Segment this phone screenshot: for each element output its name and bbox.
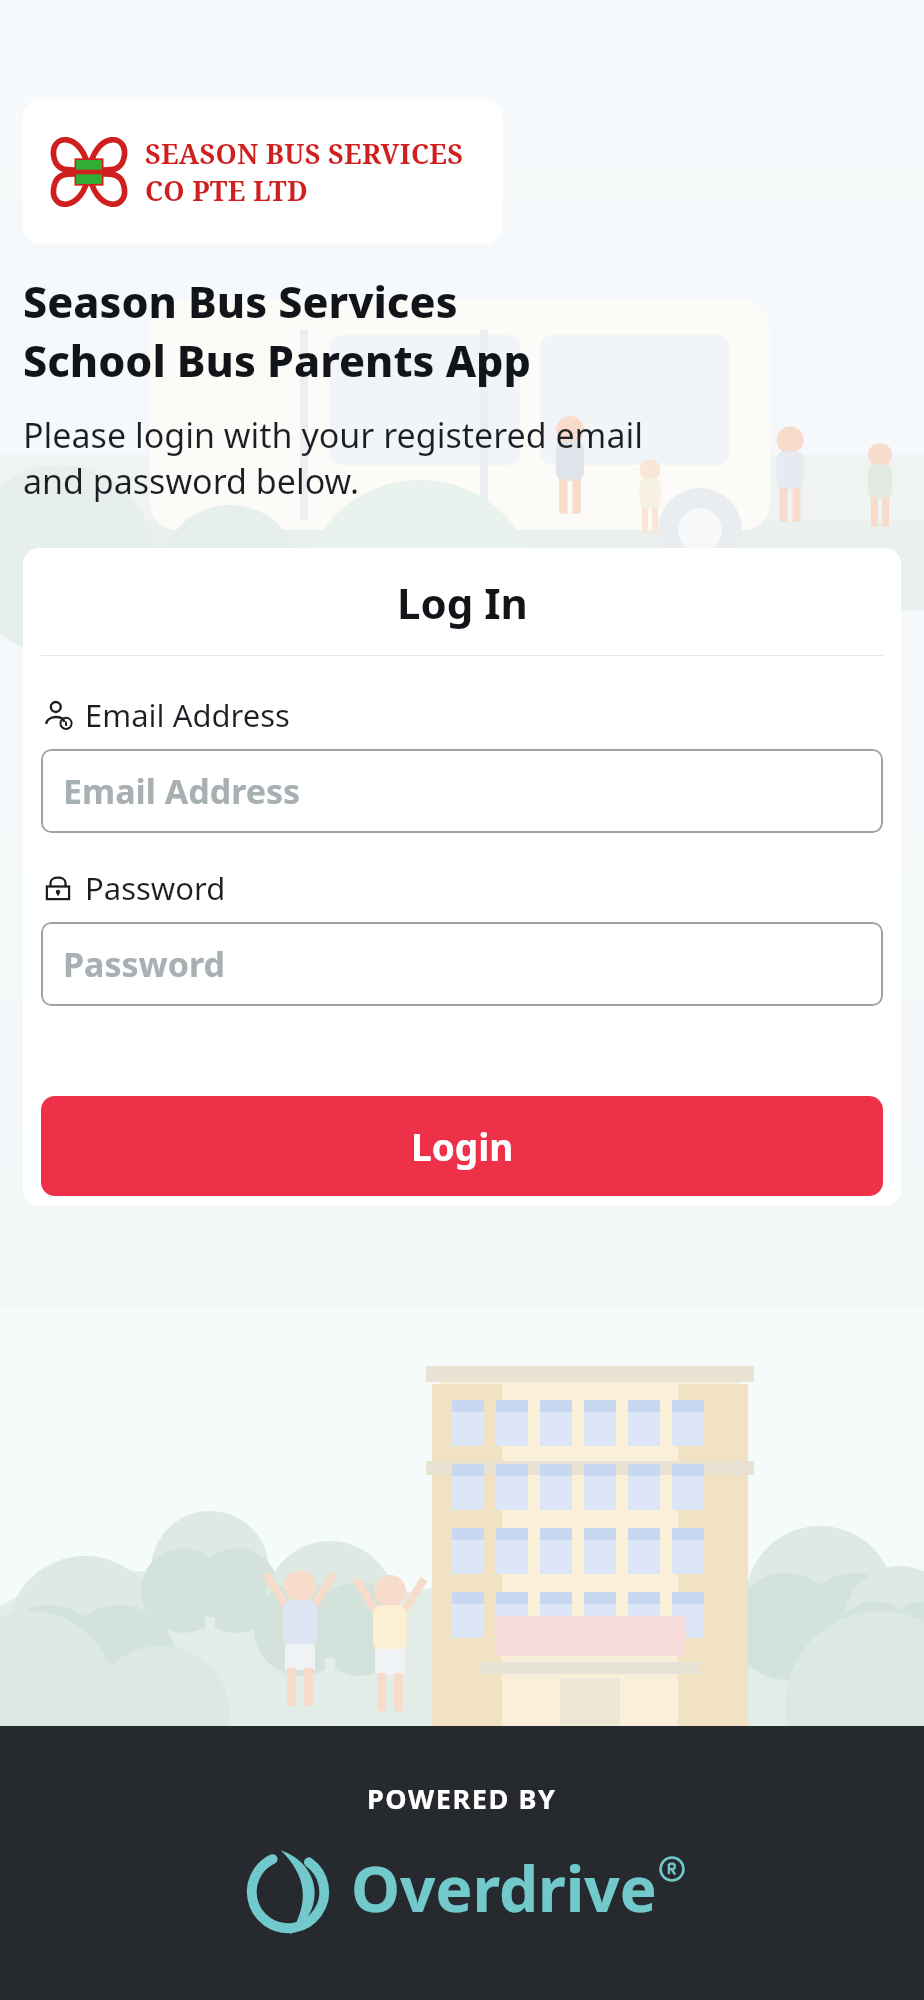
staticText: Log In bbox=[397, 574, 528, 631]
staticText: Password bbox=[63, 941, 225, 987]
staticText: Season Bus Services bbox=[23, 272, 458, 331]
staticText: Email Address bbox=[85, 694, 290, 736]
button[interactable]: Login bbox=[41, 1096, 883, 1196]
button[interactable]: Password bbox=[41, 922, 883, 1006]
staticText: SEASON BUS SERVICES CO PTE LTD bbox=[145, 135, 503, 209]
staticText: Password bbox=[85, 867, 226, 909]
staticText: Please login with your registered email bbox=[23, 412, 644, 458]
staticText: POWERED BY bbox=[367, 1780, 557, 1817]
staticText: Email Address bbox=[63, 768, 301, 814]
staticText: and password below. bbox=[23, 458, 360, 504]
button[interactable]: Email Address bbox=[41, 749, 883, 833]
staticText: Login bbox=[411, 1121, 514, 1171]
staticText: School Bus Parents App bbox=[23, 331, 531, 390]
staticText: Overdrive bbox=[351, 1846, 657, 1930]
